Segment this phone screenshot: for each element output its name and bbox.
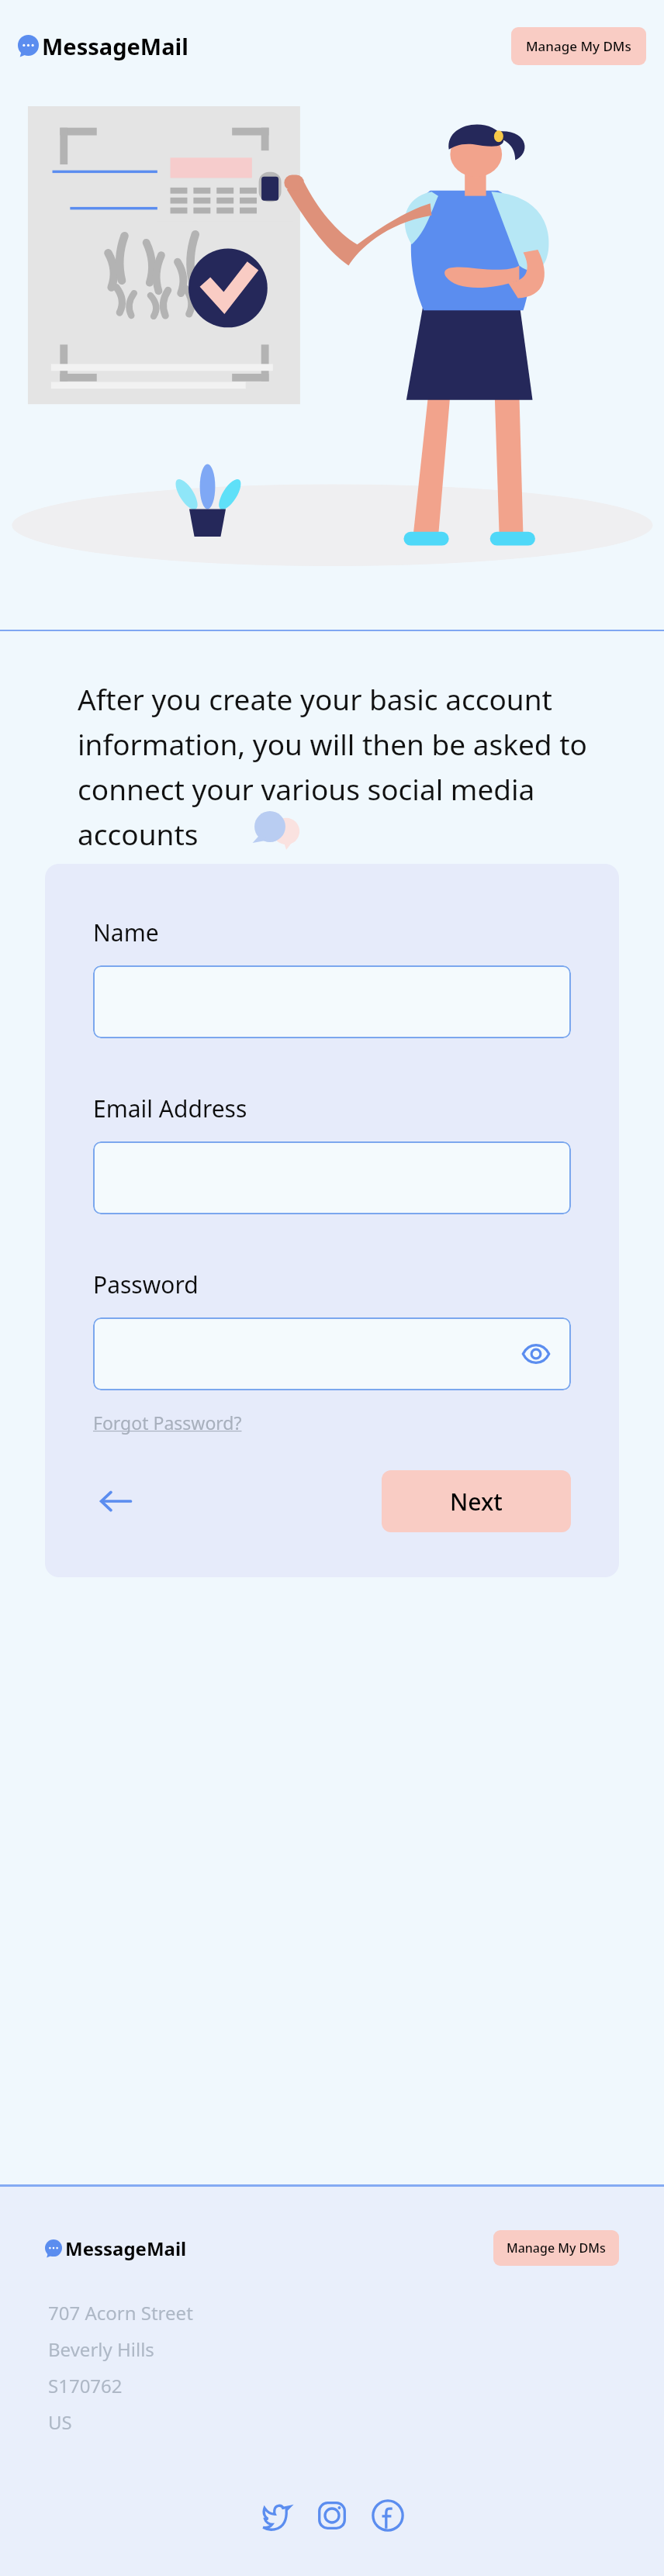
staticText: MessageMail: [65, 2236, 187, 2261]
button[interactable]: Next: [382, 1470, 571, 1532]
staticText: After you create your basic account info…: [78, 679, 633, 853]
staticText: Beverly Hills: [48, 2336, 154, 2362]
button[interactable]: Facebook: [371, 2498, 405, 2533]
staticText: Name: [93, 917, 159, 948]
staticText: Manage My DMs: [526, 37, 631, 55]
button[interactable]: [93, 965, 571, 1038]
staticText: US: [48, 2409, 72, 2435]
staticText: MessageMail: [42, 31, 188, 61]
button[interactable]: Forgot Password?: [93, 1411, 242, 1435]
staticText: 707 Acorn Street: [48, 2300, 193, 2326]
button[interactable]: Instagram: [315, 2498, 349, 2533]
button[interactable]: Back: [93, 1482, 140, 1521]
button[interactable]: Twitter: [259, 2498, 293, 2533]
staticText: S170762: [48, 2373, 123, 2398]
staticText: Password: [93, 1269, 199, 1300]
staticText: Forgot Password?: [93, 1411, 242, 1435]
button[interactable]: MessageMail: [18, 31, 188, 61]
button[interactable]: Show password: [93, 1317, 571, 1390]
button[interactable]: MessageMail: [45, 2236, 187, 2261]
staticText: Email Address: [93, 1093, 247, 1124]
staticText: Next: [450, 1486, 503, 1518]
button[interactable]: [93, 1141, 571, 1214]
button[interactable]: Manage My DMs: [493, 2230, 619, 2266]
button[interactable]: Manage My DMs: [511, 27, 646, 65]
staticText: Manage My DMs: [507, 2239, 606, 2257]
other: Show password: [521, 1339, 551, 1369]
